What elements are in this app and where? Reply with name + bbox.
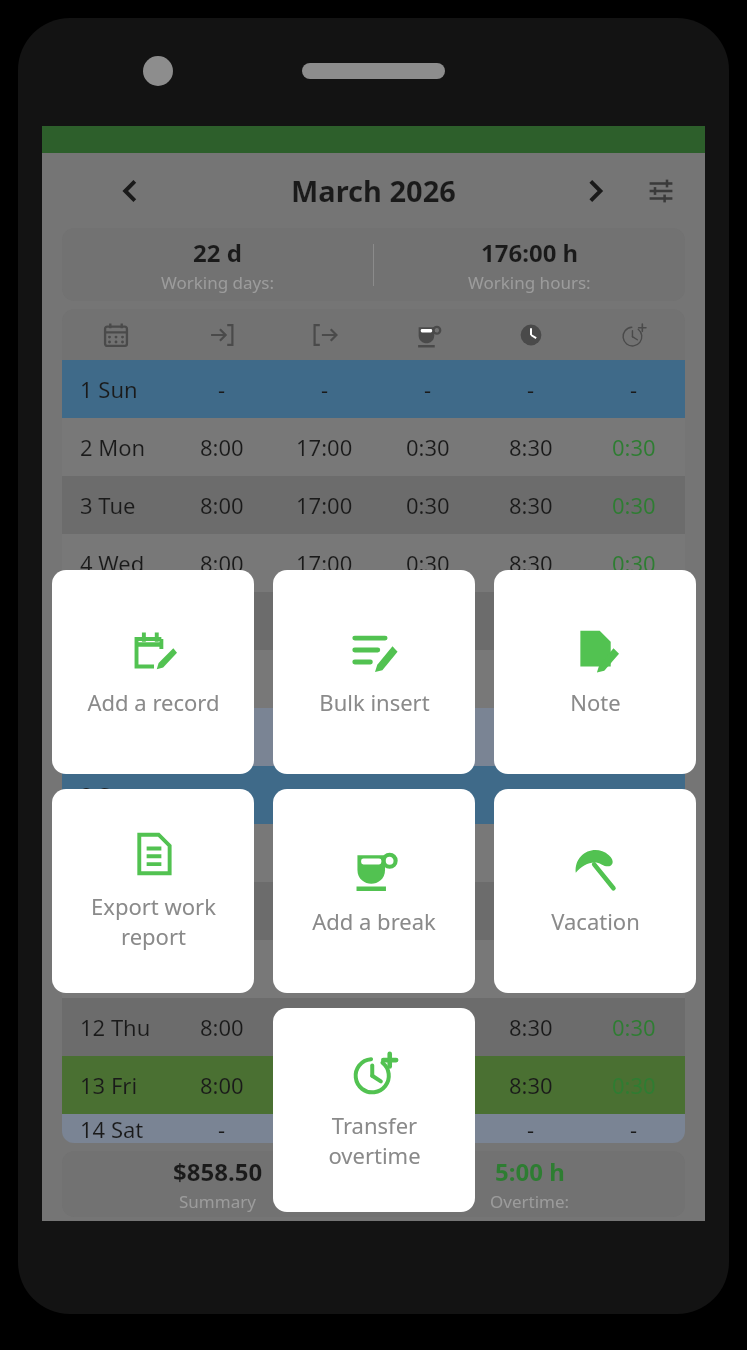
staticText: Note — [570, 687, 621, 717]
staticText: - — [630, 374, 638, 404]
button[interactable]: Add a break — [273, 789, 475, 993]
staticText: 0:30 — [406, 490, 450, 520]
staticText: 8:00 — [200, 1012, 244, 1042]
button[interactable]: 7 Sat — [62, 708, 685, 766]
staticText: 1 Sun — [80, 374, 138, 404]
staticText: 4 Wed — [80, 548, 145, 578]
staticText: 0:30 — [612, 432, 656, 462]
button[interactable]: 5 Thu — [62, 592, 685, 650]
staticText: - — [527, 374, 535, 404]
button[interactable]: Previous month — [102, 163, 158, 219]
staticText: 8:00 — [200, 896, 244, 926]
staticText: 17:00 — [296, 896, 353, 926]
staticText: 8:30 — [509, 896, 553, 926]
staticText: 17:00 — [296, 548, 353, 578]
button[interactable]: 4 Wed — [62, 534, 685, 592]
staticText: 0:30 — [406, 548, 450, 578]
staticText: 0:30 — [612, 490, 656, 520]
staticText: 10 Tue — [80, 896, 149, 926]
staticText: 17:00 — [296, 432, 353, 462]
button[interactable]: 10 Tue — [62, 882, 685, 940]
staticText: 8:00 — [200, 548, 244, 578]
button[interactable]: Transfer overtime — [273, 1008, 475, 1212]
staticText: 8:30 — [509, 1070, 553, 1100]
button[interactable]: Bulk insert — [273, 570, 475, 774]
button[interactable]: Next month — [567, 163, 623, 219]
staticText: 5:00 h — [495, 1155, 565, 1188]
staticText: Working days: — [161, 271, 274, 294]
staticText: 0:30 — [612, 548, 656, 578]
button[interactable]: 12 Thu — [62, 998, 685, 1056]
button[interactable]: Settings — [633, 163, 689, 219]
button[interactable]: 14 Sat — [62, 1114, 685, 1143]
staticText: 2 Mon — [80, 432, 146, 462]
button[interactable]: Add a record — [52, 570, 254, 774]
staticText: 0:30 — [612, 1012, 656, 1042]
staticText: - — [321, 780, 329, 810]
staticText: - — [424, 780, 432, 810]
staticText: - — [630, 780, 638, 810]
button[interactable]: 2 Mon — [62, 418, 685, 476]
staticText: 22 d — [193, 236, 242, 269]
button[interactable]: 6 Fri — [62, 650, 685, 708]
button[interactable]: Vacation — [494, 789, 696, 993]
button[interactable]: 22 d — [62, 228, 685, 301]
staticText: Working hours: — [468, 271, 591, 294]
staticText: 176:00 h — [481, 236, 579, 269]
button[interactable]: 9 Mon — [62, 824, 685, 882]
button[interactable]: 11 Wed — [62, 940, 685, 998]
staticText: 8:00 — [200, 432, 244, 462]
staticText: $858.50 — [173, 1155, 263, 1188]
button[interactable]: 13 Fri — [62, 1056, 685, 1114]
button[interactable]: $858.50 — [62, 1151, 685, 1217]
staticText: 8:30 — [509, 432, 553, 462]
staticText: Add a break — [312, 906, 436, 936]
button[interactable]: 3 Tue — [62, 476, 685, 534]
staticText: - — [527, 1114, 535, 1143]
staticText: 13 Fri — [80, 1070, 138, 1100]
button[interactable]: 1 Sun — [62, 360, 685, 418]
button[interactable]: Note — [494, 570, 696, 774]
staticText: 0:30 — [406, 896, 450, 926]
staticText: 8 Sun — [80, 780, 138, 810]
staticText: Bulk insert — [319, 687, 430, 717]
button[interactable]: 8 Sun — [62, 766, 685, 824]
staticText: - — [218, 780, 226, 810]
staticText: 17:00 — [296, 490, 353, 520]
staticText: Transfer overtime — [328, 1110, 421, 1171]
staticText: Overtime: — [490, 1190, 570, 1213]
staticText: Export work report — [91, 891, 216, 952]
staticText: 8:30 — [509, 1012, 553, 1042]
staticText: 0:30 — [612, 838, 656, 868]
staticText: 8:00 — [200, 1070, 244, 1100]
staticText: Vacation — [551, 906, 640, 936]
button[interactable]: Export work report — [52, 789, 254, 993]
